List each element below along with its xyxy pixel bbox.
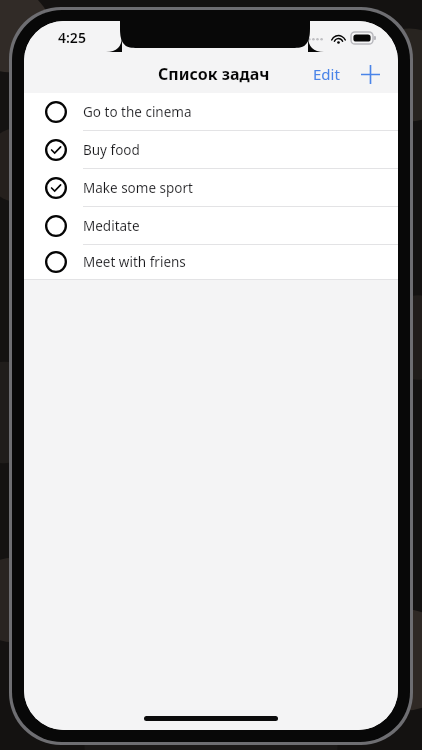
button[interactable]: Buy food bbox=[24, 131, 398, 168]
staticText: 4:25 bbox=[58, 28, 86, 47]
staticText: Make some sport bbox=[83, 179, 193, 197]
staticText: Go to the cinema bbox=[83, 103, 192, 121]
button[interactable]: Meditate bbox=[24, 207, 398, 244]
button[interactable]: Edit bbox=[307, 58, 346, 90]
button[interactable]: Meet with friens bbox=[24, 245, 398, 279]
button[interactable]: Go to the cinema bbox=[24, 93, 398, 130]
staticText: Buy food bbox=[83, 141, 140, 159]
staticText: Список задач bbox=[158, 63, 270, 85]
staticText: Meditate bbox=[83, 217, 140, 235]
staticText: Meet with friens bbox=[83, 253, 186, 271]
button[interactable]: Make some sport bbox=[24, 169, 398, 206]
staticText: Edit bbox=[313, 64, 340, 84]
button[interactable]: Add task bbox=[356, 60, 384, 88]
